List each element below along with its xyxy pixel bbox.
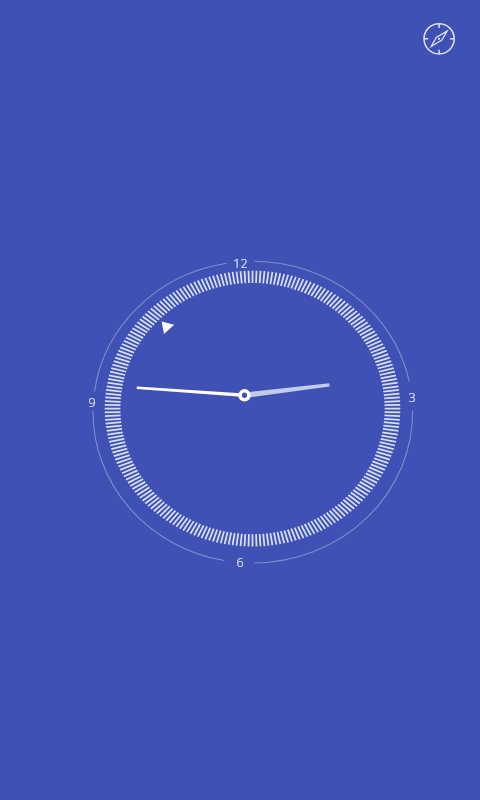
button[interactable]: Compass [421,20,458,57]
staticText: 9 [88,394,96,411]
staticText: 12 [233,255,248,272]
staticText: 3 [408,389,416,406]
staticText: 6 [236,554,244,571]
